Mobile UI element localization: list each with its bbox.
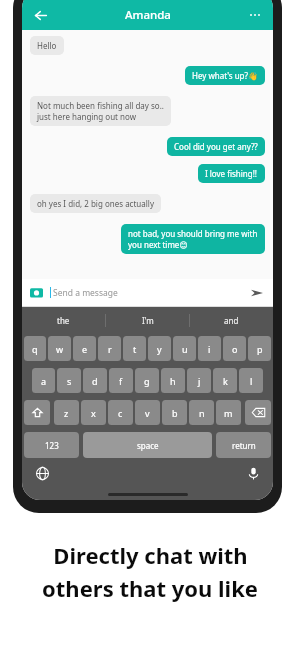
staticText: m xyxy=(224,407,233,419)
button[interactable]: Backspace xyxy=(245,400,271,425)
button[interactable]: c xyxy=(108,400,133,425)
staticText: g xyxy=(144,375,150,387)
staticText: 123 xyxy=(45,440,59,451)
button[interactable]: r xyxy=(98,336,121,361)
staticText: I love fishing!! xyxy=(205,168,258,179)
button[interactable]: Change language xyxy=(32,463,52,483)
button[interactable]: d xyxy=(83,368,107,393)
staticText: Hello xyxy=(37,40,57,51)
button[interactable]: h xyxy=(161,368,185,393)
staticText: f xyxy=(119,375,123,387)
button[interactable]: j xyxy=(187,368,211,393)
button[interactable]: More options xyxy=(243,3,267,27)
staticText: j xyxy=(198,375,201,387)
staticText: r xyxy=(108,343,112,355)
button[interactable]: 123 xyxy=(24,432,79,458)
button[interactable]: t xyxy=(123,336,146,361)
button[interactable]: y xyxy=(148,336,171,361)
button[interactable]: Hey what's up?👋 xyxy=(185,66,265,85)
staticText: Amanda xyxy=(125,7,171,23)
staticText: Directly chat with xyxy=(53,540,248,570)
button[interactable]: f xyxy=(109,368,133,393)
button[interactable]: u xyxy=(173,336,196,361)
staticText: a xyxy=(41,375,47,387)
staticText: x xyxy=(91,407,96,419)
button[interactable]: the xyxy=(22,307,105,333)
staticText: Send a message xyxy=(53,287,248,299)
button[interactable]: i xyxy=(198,336,221,361)
button[interactable]: b xyxy=(162,400,187,425)
button[interactable]: return xyxy=(216,432,271,458)
staticText: l xyxy=(250,375,253,387)
button[interactable]: w xyxy=(48,336,71,361)
staticText: oh yes I did, 2 big ones actually xyxy=(37,198,154,209)
staticText: q xyxy=(32,343,38,355)
staticText: t xyxy=(133,343,137,355)
button[interactable]: Not much been fishing all day so.. just … xyxy=(30,96,171,126)
button[interactable]: Cool did you get any?? xyxy=(167,137,265,156)
button[interactable]: x xyxy=(81,400,106,425)
staticText: w xyxy=(56,343,64,355)
staticText: Not much been fishing all day so.. just … xyxy=(37,100,164,122)
button[interactable]: p xyxy=(248,336,271,361)
button[interactable]: I love fishing!! xyxy=(198,164,265,183)
button[interactable]: Shift xyxy=(24,400,50,425)
button[interactable]: and xyxy=(190,307,273,333)
staticText: y xyxy=(157,343,162,355)
staticText: b xyxy=(172,407,178,419)
button[interactable]: z xyxy=(54,400,79,425)
staticText: p xyxy=(257,343,263,355)
staticText: u xyxy=(182,343,188,355)
button[interactable]: e xyxy=(73,336,96,361)
button[interactable]: not bad, you should bring me with you ne… xyxy=(121,224,265,254)
button[interactable]: Voice input xyxy=(243,463,263,483)
button[interactable]: n xyxy=(189,400,214,425)
staticText: others that you like xyxy=(42,573,258,603)
staticText: n xyxy=(199,407,205,419)
staticText: and xyxy=(224,315,239,326)
staticText: Cool did you get any?? xyxy=(174,141,258,152)
staticText: h xyxy=(170,375,176,387)
button[interactable]: I'm xyxy=(106,307,189,333)
button[interactable]: Send xyxy=(248,284,266,302)
button[interactable]: o xyxy=(223,336,246,361)
staticText: not bad, you should bring me with you ne… xyxy=(128,228,258,250)
staticText: z xyxy=(64,407,69,419)
button[interactable]: v xyxy=(135,400,160,425)
staticText: c xyxy=(118,407,123,419)
button[interactable]: Camera xyxy=(29,285,44,300)
button[interactable]: s xyxy=(57,368,81,393)
button[interactable]: Back xyxy=(28,3,52,27)
staticText: space xyxy=(137,440,159,451)
staticText: i xyxy=(208,343,211,355)
button[interactable]: space xyxy=(83,432,212,458)
button[interactable]: Hello xyxy=(30,36,64,55)
staticText: return xyxy=(232,440,256,451)
button[interactable]: q xyxy=(24,336,46,361)
staticText: k xyxy=(223,375,228,387)
button[interactable]: a xyxy=(32,368,55,393)
staticText: s xyxy=(67,375,72,387)
button[interactable]: l xyxy=(239,368,263,393)
button[interactable]: oh yes I did, 2 big ones actually xyxy=(30,194,161,213)
staticText: the xyxy=(57,315,70,326)
button[interactable]: g xyxy=(135,368,159,393)
staticText: o xyxy=(232,343,238,355)
staticText: v xyxy=(145,407,150,419)
button[interactable]: k xyxy=(213,368,237,393)
staticText: e xyxy=(82,343,88,355)
staticText: Hey what's up?👋 xyxy=(192,70,258,81)
button[interactable]: m xyxy=(216,400,241,425)
staticText: d xyxy=(92,375,98,387)
staticText: I'm xyxy=(142,315,154,326)
